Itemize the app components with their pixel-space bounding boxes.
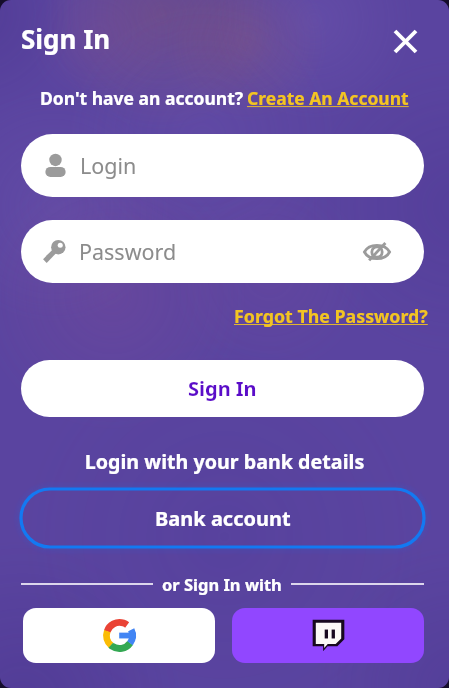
staticText: Bank account xyxy=(155,505,291,532)
button[interactable]: Password xyxy=(21,220,424,283)
staticText: Sign In xyxy=(21,21,111,56)
button[interactable]: Close xyxy=(383,19,427,63)
staticText: Sign In xyxy=(188,375,257,402)
button[interactable]: Show password xyxy=(361,236,393,268)
staticText: Forgot The Password? xyxy=(234,304,428,328)
staticText: Create An Account xyxy=(247,86,409,110)
button[interactable]: Sign in with Google xyxy=(23,608,215,663)
button[interactable]: Sign in with Twitch xyxy=(232,608,424,663)
button[interactable]: Bank account xyxy=(21,489,424,547)
staticText: Login with your bank details xyxy=(0,448,449,475)
button[interactable]: Sign In xyxy=(21,360,424,417)
button[interactable]: Login xyxy=(21,134,424,197)
staticText: Don't have an account? xyxy=(40,86,244,110)
staticText: Password xyxy=(79,237,361,266)
staticText: or Sign In with xyxy=(162,573,282,595)
staticText: Login xyxy=(80,151,137,180)
button[interactable]: Forgot The Password? xyxy=(234,304,428,328)
button[interactable]: Create An Account xyxy=(247,86,409,110)
